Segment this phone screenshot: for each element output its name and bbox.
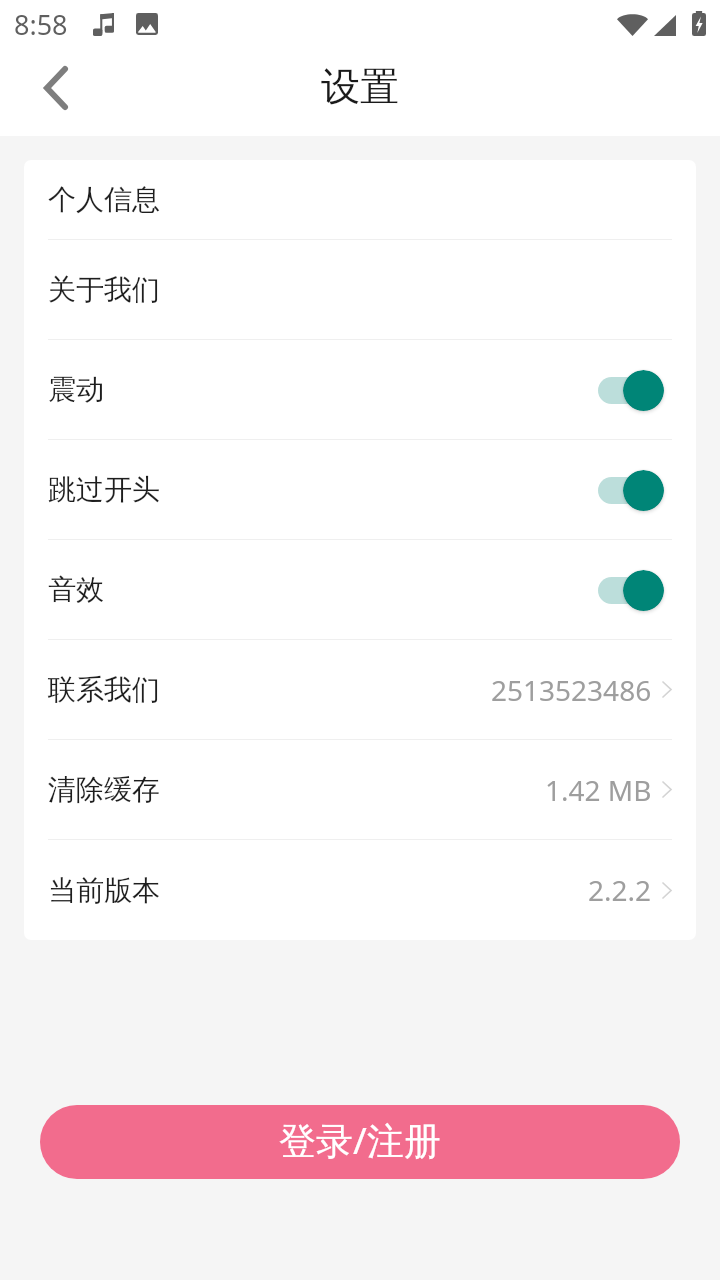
button[interactable]: Back — [0, 50, 112, 136]
button[interactable]: 音效 — [24, 540, 696, 639]
button[interactable]: 联系我们 — [24, 640, 696, 739]
button[interactable]: 跳过开头 — [24, 440, 696, 539]
staticText: 2.2.2 — [588, 871, 652, 909]
button[interactable]: 震动 — [24, 340, 696, 439]
staticText: 1.42 MB — [545, 771, 652, 809]
button[interactable]: 当前版本 — [24, 840, 696, 940]
staticText: 联系我们 — [48, 672, 160, 707]
staticText: 震动 — [48, 372, 104, 407]
staticText: 8:58 — [14, 6, 68, 43]
staticText: 清除缓存 — [48, 772, 160, 807]
staticText: 个人信息 — [48, 182, 160, 217]
button[interactable]: 关于我们 — [24, 240, 696, 339]
staticText: 2513523486 — [491, 671, 652, 709]
staticText: 关于我们 — [48, 272, 160, 307]
staticText: 登录/注册 — [279, 1114, 441, 1165]
button[interactable]: 跳过开头 — [590, 467, 672, 513]
staticText: 音效 — [48, 572, 104, 607]
button[interactable]: 震动 — [590, 367, 672, 413]
staticText: 当前版本 — [48, 873, 160, 908]
button[interactable]: 音效 — [590, 567, 672, 613]
staticText: 跳过开头 — [48, 472, 160, 507]
button[interactable]: 个人信息 — [24, 160, 696, 239]
button[interactable]: 清除缓存 — [24, 740, 696, 839]
staticText: 设置 — [321, 62, 399, 111]
button[interactable]: 登录/注册 — [40, 1105, 680, 1179]
